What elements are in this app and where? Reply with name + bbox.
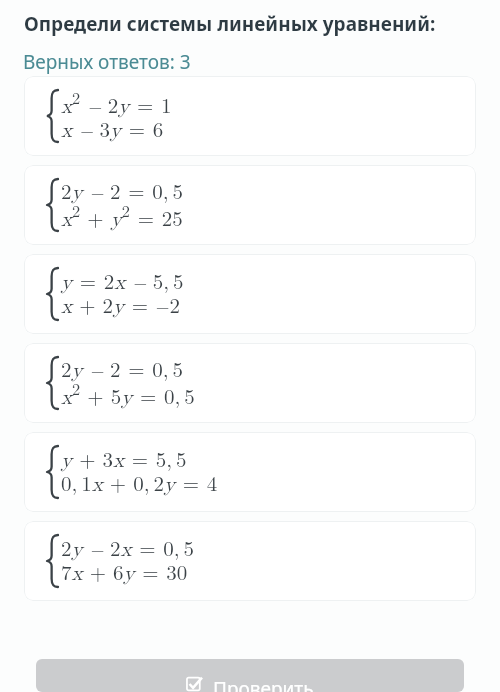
staticText: 2y − 2 = 0, 5 — [61, 353, 183, 383]
button[interactable]: y = 2x − 5, 5 — [24, 254, 476, 334]
staticText: Проверить — [213, 676, 314, 692]
other: Отмечено — [186, 676, 204, 692]
staticText: 7x + 6y = 30 — [61, 556, 188, 586]
button[interactable]: Отмечено — [36, 659, 464, 692]
staticText: Определи системы линейных уравнений: — [24, 11, 436, 37]
button[interactable]: x2 − 2y = 1 — [24, 76, 476, 156]
staticText: 2y − 2x = 0, 5 — [61, 532, 194, 562]
staticText: 2y − 2 = 0, 5 — [61, 175, 183, 205]
staticText: Верных ответов: 3 — [23, 49, 191, 75]
staticText: x2 + y2 = 25 — [61, 199, 183, 232]
staticText: 0, 1x + 0, 2y = 4 — [61, 467, 218, 497]
button[interactable]: 2y − 2 = 0, 5 — [24, 343, 476, 423]
staticText: x2 − 2y = 1 — [61, 86, 172, 119]
button[interactable]: 2y − 2 = 0, 5 — [24, 165, 476, 245]
staticText: x − 3y = 6 — [61, 113, 164, 143]
staticText: y + 3x = 5, 5 — [61, 443, 187, 473]
staticText: x + 2y = −2 — [61, 289, 181, 319]
staticText: x2 + 5y = 0, 5 — [61, 377, 195, 410]
button[interactable]: y + 3x = 5, 5 — [24, 432, 476, 512]
button[interactable]: 2y − 2x = 0, 5 — [24, 521, 476, 601]
staticText: y = 2x − 5, 5 — [61, 265, 184, 295]
